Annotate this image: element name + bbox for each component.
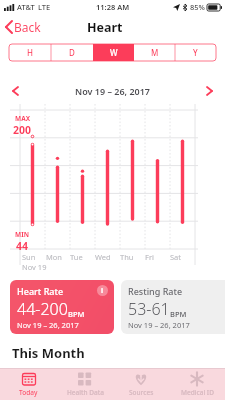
- button[interactable]: Sources: [113, 369, 169, 400]
- staticText: Wed: [95, 252, 111, 262]
- staticText: Heart: [87, 19, 123, 36]
- staticText: H: [27, 47, 33, 58]
- staticText: Nov 19: [22, 262, 47, 272]
- staticText: Thu: [120, 252, 134, 262]
- staticText: BPM: [170, 309, 187, 319]
- button[interactable]: Health Data: [57, 369, 113, 400]
- staticText: 200: [13, 123, 32, 137]
- staticText: Sat: [170, 252, 182, 262]
- staticText: Fri: [145, 252, 154, 262]
- staticText: 85%: [190, 2, 205, 12]
- button[interactable]: Today: [0, 369, 57, 400]
- staticText: Sun: [22, 252, 36, 262]
- staticText: Y: [193, 47, 198, 58]
- staticText: Resting Rate: [128, 285, 183, 297]
- staticText: MIN: [15, 230, 29, 239]
- button[interactable]: Y: [175, 44, 216, 61]
- staticText: Tue: [70, 252, 83, 262]
- staticText: Heart Rate: [17, 285, 64, 297]
- staticText: BPM: [68, 309, 85, 319]
- staticText: MAX: [15, 114, 30, 123]
- staticText: W: [110, 47, 118, 58]
- staticText: Back: [14, 19, 41, 35]
- button[interactable]: Medical ID: [169, 369, 225, 400]
- staticText: 44: [16, 239, 29, 253]
- staticText: Nov 19 – 26, 2017: [17, 320, 79, 330]
- other: Info: [97, 285, 108, 296]
- staticText: AT&T: [17, 2, 35, 12]
- staticText: This Month: [12, 344, 85, 362]
- staticText: 11:28 AM: [96, 2, 130, 12]
- button[interactable]: H: [9, 44, 51, 61]
- staticText: i: [101, 286, 104, 296]
- button[interactable]: Resting Rate: [121, 280, 225, 334]
- staticText: Nov 19 – 26, 2017: [128, 320, 190, 330]
- staticText: 53-61: [128, 298, 170, 320]
- button[interactable]: D: [51, 44, 93, 61]
- staticText: LTE: [38, 2, 51, 12]
- staticText: Today: [19, 388, 38, 397]
- staticText: Medical ID: [181, 388, 214, 397]
- button[interactable]: W: [93, 44, 134, 61]
- staticText: M: [151, 47, 159, 58]
- staticText: Sources: [129, 388, 154, 397]
- button[interactable]: M: [134, 44, 175, 61]
- button[interactable]: Back: [0, 15, 49, 39]
- staticText: Health Data: [67, 388, 104, 397]
- staticText: 44-200: [17, 298, 68, 320]
- button[interactable]: Heart Rate: [10, 280, 114, 334]
- button[interactable]: Previous week: [8, 83, 22, 99]
- staticText: Nov 19 – 26, 2017: [75, 85, 150, 97]
- button[interactable]: Next week: [203, 83, 217, 99]
- staticText: D: [69, 47, 75, 58]
- staticText: Mon: [46, 252, 62, 262]
